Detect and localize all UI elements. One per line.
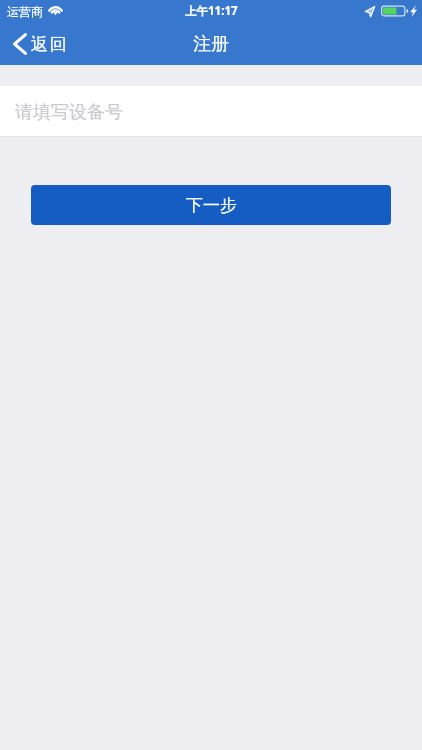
staticText: 注册: [193, 33, 229, 56]
button[interactable]: 请填写设备号: [0, 86, 422, 136]
staticText: 返回: [31, 34, 69, 55]
other: Charging: [410, 5, 417, 17]
other: Battery: [381, 5, 408, 17]
staticText: 上午11:17: [185, 3, 238, 19]
other: Location: [365, 6, 375, 17]
button[interactable]: 下一步: [31, 185, 391, 225]
staticText: 运营商: [7, 4, 43, 19]
other: Back: [13, 33, 27, 55]
other: Wi-Fi: [48, 4, 63, 15]
staticText: 下一步: [186, 195, 237, 216]
button[interactable]: Back: [0, 26, 81, 61]
staticText: 请填写设备号: [15, 101, 123, 124]
